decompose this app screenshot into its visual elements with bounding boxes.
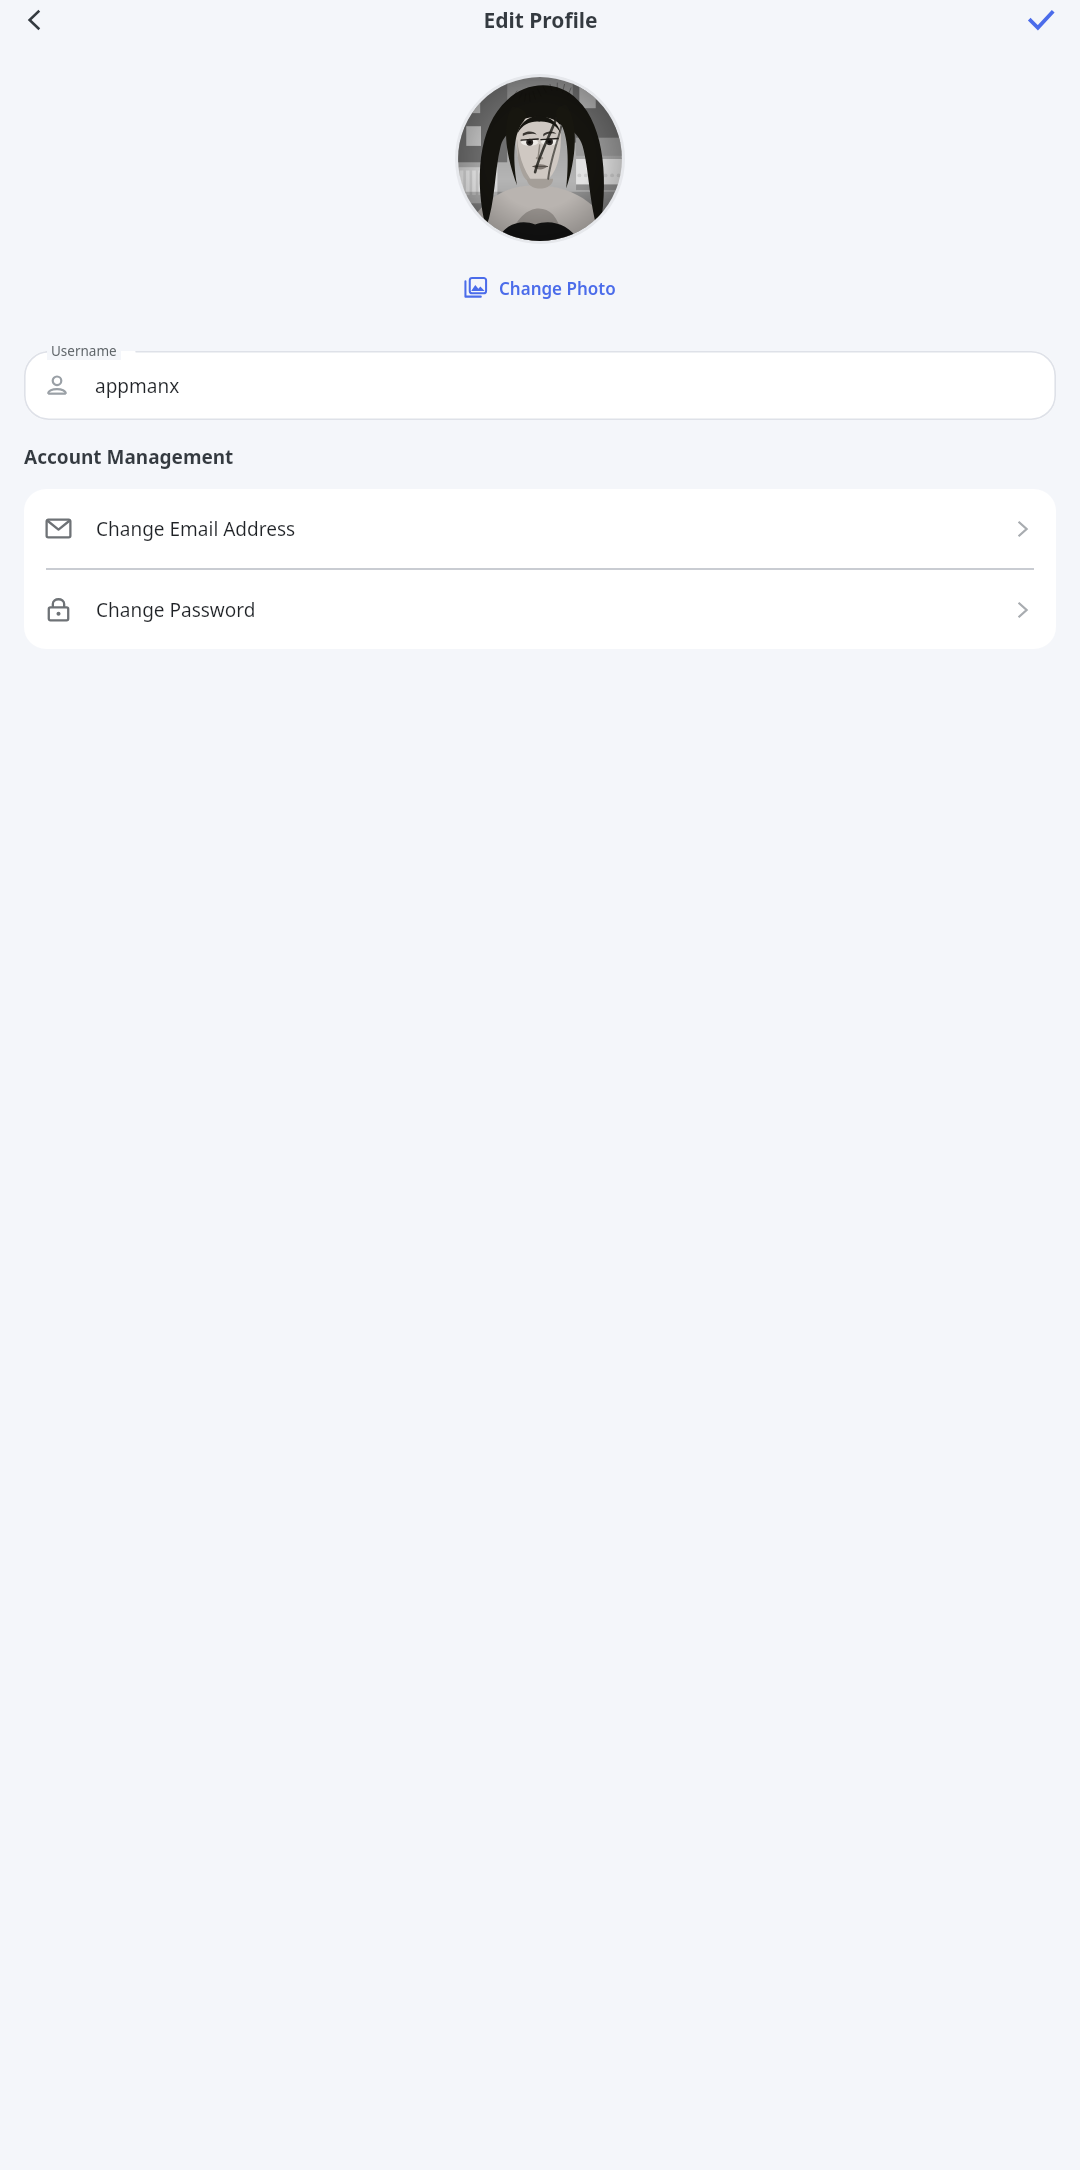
button[interactable]: Save [1024,3,1058,37]
staticText: Change Photo [499,277,616,300]
button[interactable]: Change Photo [458,272,622,304]
button[interactable]: Back [19,5,49,35]
button[interactable]: Profile photo [455,74,625,244]
staticText: Change Email Address [96,516,1014,542]
staticText: Change Password [96,597,1014,623]
button[interactable]: Change Password [24,570,1056,649]
staticText: Edit Profile [483,6,598,35]
button[interactable]: Change Email Address [24,489,1056,568]
staticText: appmanx [95,373,180,399]
staticText: Account Management [24,444,234,470]
staticText: Username [51,342,117,360]
button[interactable]: appmanx [24,351,1056,420]
